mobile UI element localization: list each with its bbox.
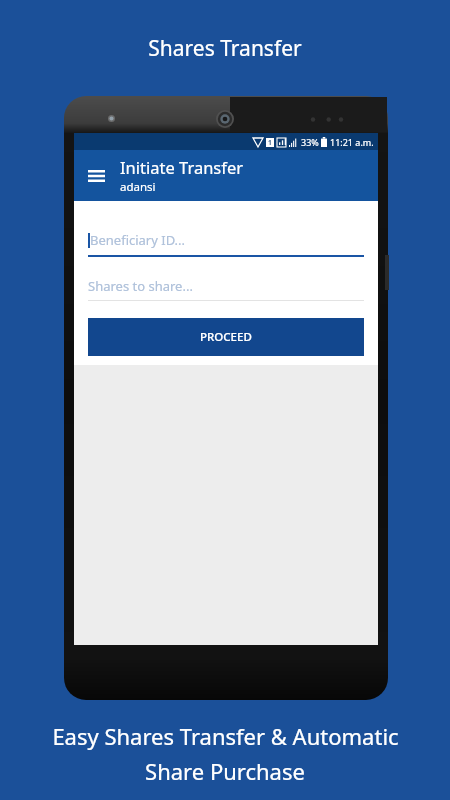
staticText: Initiate Transfer [120, 156, 244, 178]
staticText: 11:21 a.m. [330, 136, 374, 148]
staticText: Shares Transfer [148, 34, 302, 63]
staticText: Shares to share... [88, 277, 193, 295]
staticText: Easy Shares Transfer & Automatic [52, 721, 399, 751]
staticText: Beneficiary ID... [90, 231, 186, 249]
button[interactable]: Shares to share... [88, 272, 364, 300]
staticText: 33% [301, 136, 319, 148]
button[interactable]: Beneficiary ID... [88, 225, 364, 255]
button[interactable]: PROCEED [88, 318, 364, 356]
button[interactable]: Open navigation menu [74, 154, 118, 198]
staticText: adansi [120, 179, 156, 195]
staticText: PROCEED [200, 329, 252, 345]
staticText: Share Purchase [145, 756, 305, 786]
staticText: 1 [268, 138, 272, 147]
